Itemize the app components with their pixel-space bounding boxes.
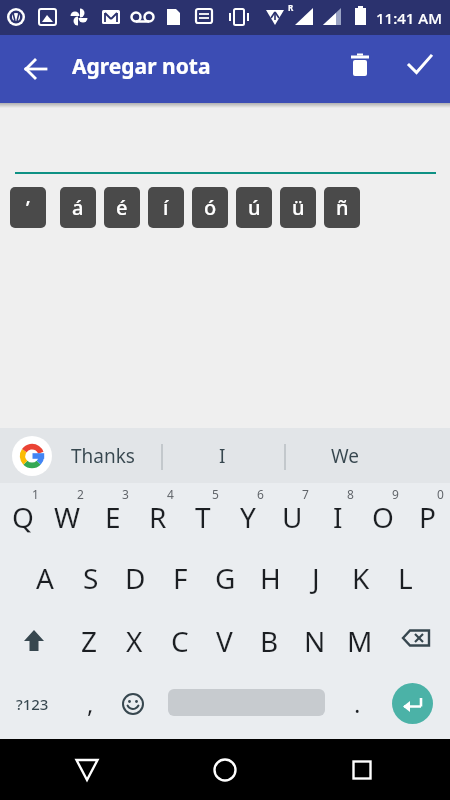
button[interactable]: U: [270, 483, 315, 546]
staticText: B: [260, 622, 279, 660]
button[interactable]: E: [90, 483, 135, 546]
button[interactable]: [52, 739, 122, 800]
button[interactable]: Y: [225, 483, 270, 546]
staticText: ü: [292, 194, 305, 221]
staticText: í: [163, 194, 169, 221]
button[interactable]: D: [113, 546, 158, 609]
button[interactable]: [382, 609, 450, 672]
staticText: C: [171, 622, 189, 660]
staticText: I: [333, 498, 343, 536]
staticText: 8: [347, 486, 354, 502]
staticText: 11:41 AM: [376, 8, 442, 28]
staticText: 9: [392, 486, 399, 502]
staticText: U: [282, 498, 303, 536]
staticText: P: [419, 498, 436, 536]
button[interactable]: ú: [236, 187, 272, 228]
button[interactable]: J: [293, 546, 338, 609]
staticText: We: [331, 443, 360, 469]
button[interactable]: L: [383, 546, 428, 609]
button[interactable]: ,: [70, 672, 110, 735]
staticText: Q: [12, 498, 34, 536]
button[interactable]: B: [247, 609, 292, 672]
staticText: Agregar nota: [72, 52, 211, 81]
staticText: D: [125, 559, 146, 597]
button[interactable]: ’: [10, 187, 46, 228]
button[interactable]: ñ: [324, 187, 360, 228]
staticText: F: [173, 559, 188, 597]
button[interactable]: K: [338, 546, 383, 609]
button[interactable]: A: [22, 546, 68, 609]
button[interactable]: [392, 683, 433, 724]
button[interactable]: Thanks: [53, 428, 153, 483]
staticText: .: [354, 687, 361, 720]
button[interactable]: S: [68, 546, 113, 609]
button[interactable]: ü: [280, 187, 316, 228]
staticText: T: [195, 498, 211, 536]
staticText: I: [219, 443, 226, 469]
button[interactable]: ó: [192, 187, 228, 228]
staticText: K: [352, 559, 370, 597]
button[interactable]: á: [60, 187, 96, 228]
staticText: A: [36, 559, 54, 597]
button[interactable]: F: [158, 546, 203, 609]
button[interactable]: [0, 609, 67, 672]
button[interactable]: Q: [0, 483, 45, 546]
button[interactable]: W: [45, 483, 90, 546]
button[interactable]: [327, 739, 397, 800]
staticText: Z: [81, 622, 98, 660]
button[interactable]: [336, 40, 384, 88]
staticText: J: [312, 559, 320, 597]
staticText: Thanks: [71, 443, 135, 469]
button[interactable]: V: [202, 609, 247, 672]
button[interactable]: M: [337, 609, 382, 672]
button[interactable]: G: [203, 546, 248, 609]
staticText: G: [215, 559, 236, 597]
button[interactable]: [190, 739, 260, 800]
staticText: M: [347, 622, 373, 660]
staticText: 3: [122, 486, 129, 502]
staticText: V: [216, 622, 233, 660]
button[interactable]: .: [337, 672, 377, 735]
staticText: R: [149, 498, 167, 536]
staticText: 0: [437, 486, 444, 502]
button[interactable]: [113, 672, 153, 735]
button[interactable]: é: [104, 187, 140, 228]
staticText: ?123: [16, 694, 49, 714]
staticText: ’: [26, 194, 30, 221]
button[interactable]: I: [315, 483, 360, 546]
button[interactable]: O: [360, 483, 405, 546]
staticText: W: [54, 498, 81, 536]
button[interactable]: ?123: [8, 672, 56, 735]
staticText: O: [372, 498, 394, 536]
staticText: ñ: [336, 194, 349, 221]
button[interactable]: [12, 45, 60, 93]
staticText: E: [105, 498, 121, 536]
staticText: 5: [212, 486, 219, 502]
button[interactable]: Z: [67, 609, 112, 672]
staticText: N: [304, 622, 326, 660]
button[interactable]: C: [157, 609, 202, 672]
button[interactable]: P: [405, 483, 450, 546]
staticText: é: [116, 194, 128, 221]
staticText: 2: [77, 486, 84, 502]
staticText: X: [126, 622, 143, 660]
staticText: ó: [204, 194, 217, 221]
button[interactable]: í: [148, 187, 184, 228]
staticText: 1: [32, 486, 39, 502]
staticText: L: [398, 559, 413, 597]
staticText: ,: [87, 687, 94, 720]
button[interactable]: [12, 436, 52, 476]
staticText: R: [288, 2, 294, 13]
button[interactable]: T: [180, 483, 225, 546]
button[interactable]: I: [172, 428, 272, 483]
button[interactable]: [396, 40, 444, 88]
button[interactable]: N: [292, 609, 337, 672]
button[interactable]: H: [248, 546, 293, 609]
button[interactable]: X: [112, 609, 157, 672]
staticText: 6: [257, 486, 264, 502]
button[interactable]: R: [135, 483, 180, 546]
staticText: Y: [240, 498, 256, 536]
button[interactable]: We: [295, 428, 395, 483]
staticText: S: [83, 559, 99, 597]
